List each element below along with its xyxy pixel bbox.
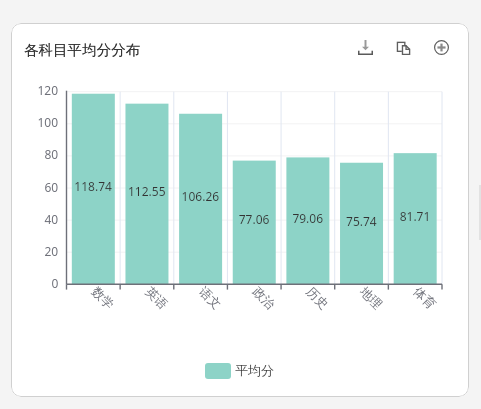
- button[interactable]: Add: [428, 34, 454, 60]
- staticText: 平均分: [235, 362, 274, 378]
- button[interactable]: Download: [352, 34, 378, 60]
- staticText: 各科目平均分分布: [24, 41, 140, 59]
- button[interactable]: 平均分: [205, 363, 274, 379]
- staticText: 各科目平均分分布: [24, 41, 140, 59]
- button[interactable]: 各科目平均分分布: [22, 38, 138, 62]
- button[interactable]: Copy: [390, 34, 416, 60]
